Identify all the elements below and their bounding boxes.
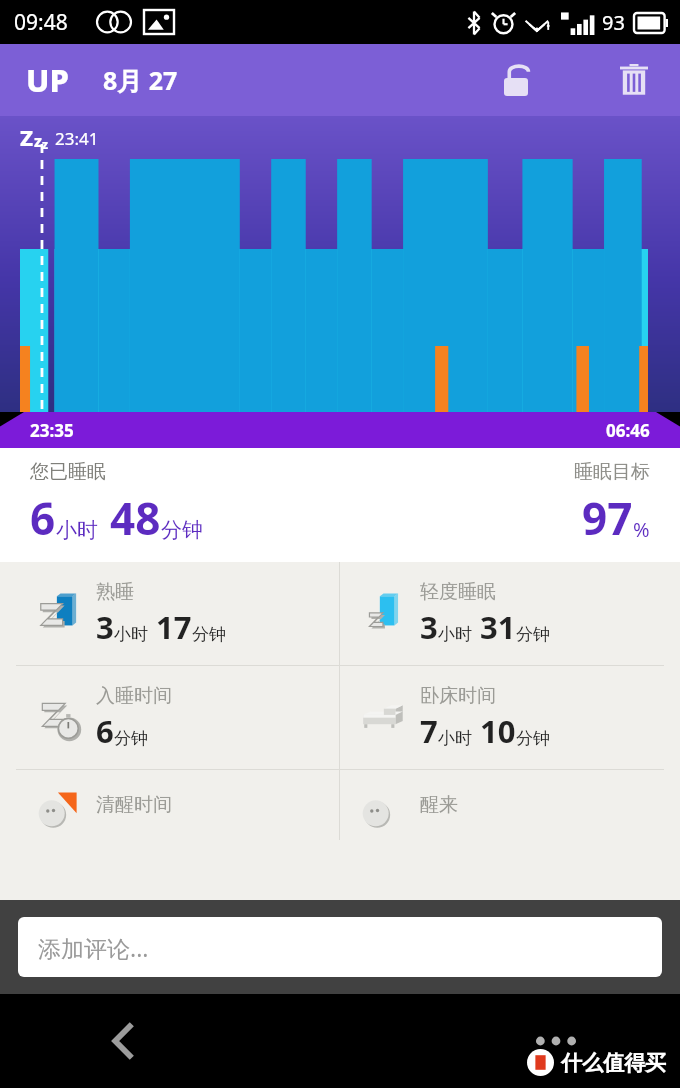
staticText: 23:41 <box>55 127 99 150</box>
staticText: 8月 27 <box>103 63 178 97</box>
staticText: Z <box>20 122 34 152</box>
staticText: 分钟 <box>516 728 550 749</box>
staticText: 23:35 <box>30 419 74 442</box>
staticText: 小时 <box>438 728 472 749</box>
staticText: 您已睡眠 <box>30 460 106 484</box>
staticText: 小时 <box>438 624 472 645</box>
staticText: 3 <box>96 606 114 648</box>
button[interactable]: 熟睡 <box>16 562 339 665</box>
staticText: 熟睡 <box>96 580 134 604</box>
staticText: 小时 <box>56 517 98 543</box>
button[interactable]: 清醒时间 <box>16 770 339 840</box>
button[interactable]: Delete <box>610 56 658 104</box>
staticText: 入睡时间 <box>96 684 172 708</box>
button[interactable]: Back <box>96 1013 152 1069</box>
staticText: 3 <box>420 606 438 648</box>
staticText: 分钟 <box>114 728 148 749</box>
staticText: 06:46 <box>606 419 650 442</box>
staticText: 清醒时间 <box>96 793 172 817</box>
button[interactable]: 醒来 <box>340 770 664 840</box>
staticText: 轻度睡眠 <box>420 580 496 604</box>
staticText: 什么值得买 <box>561 1050 666 1076</box>
button[interactable]: 卧床时间 <box>340 666 664 769</box>
staticText: 48 <box>110 488 161 548</box>
staticText: z <box>42 136 48 152</box>
staticText: 小时 <box>114 624 148 645</box>
staticText: 17 <box>156 606 192 648</box>
staticText: 31 <box>480 606 516 648</box>
staticText: 6 <box>30 488 56 548</box>
staticText: 睡眠目标 <box>574 460 650 484</box>
staticText: 93 <box>602 9 625 36</box>
button[interactable]: 轻度睡眠 <box>340 562 664 665</box>
staticText: 卧床时间 <box>420 684 496 708</box>
staticText: 分钟 <box>192 624 226 645</box>
button[interactable]: 添加评论... <box>18 917 662 977</box>
staticText: 6 <box>96 710 114 752</box>
staticText: 97 <box>582 488 633 548</box>
button[interactable]: More options <box>528 1013 584 1069</box>
button[interactable]: 入睡时间 <box>16 666 339 769</box>
staticText: 醒来 <box>420 793 458 817</box>
button[interactable]: Unlock <box>492 56 540 104</box>
staticText: 10 <box>480 710 516 752</box>
staticText: 7 <box>420 710 438 752</box>
staticText: % <box>633 516 650 543</box>
staticText: 分钟 <box>516 624 550 645</box>
staticText: 分钟 <box>161 517 203 543</box>
staticText: UP <box>26 59 69 101</box>
staticText: 添加评论... <box>38 932 149 963</box>
staticText: z <box>34 130 42 152</box>
staticText: 09:48 <box>14 8 68 37</box>
